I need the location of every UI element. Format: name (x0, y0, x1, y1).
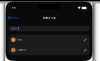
staticText: Alex (17, 38, 21, 41)
staticText: Search (11, 27, 17, 30)
button[interactable]: Search (8, 26, 89, 31)
staticText: Profile (11, 17, 18, 19)
staticText: Friend list (42, 16, 55, 20)
button[interactable]: Charlie (8, 45, 89, 55)
staticText: Charlie (17, 49, 25, 51)
button[interactable]: Profile (7, 15, 20, 21)
button[interactable]: Alex (8, 35, 89, 45)
staticText: 9:41 (11, 7, 15, 9)
